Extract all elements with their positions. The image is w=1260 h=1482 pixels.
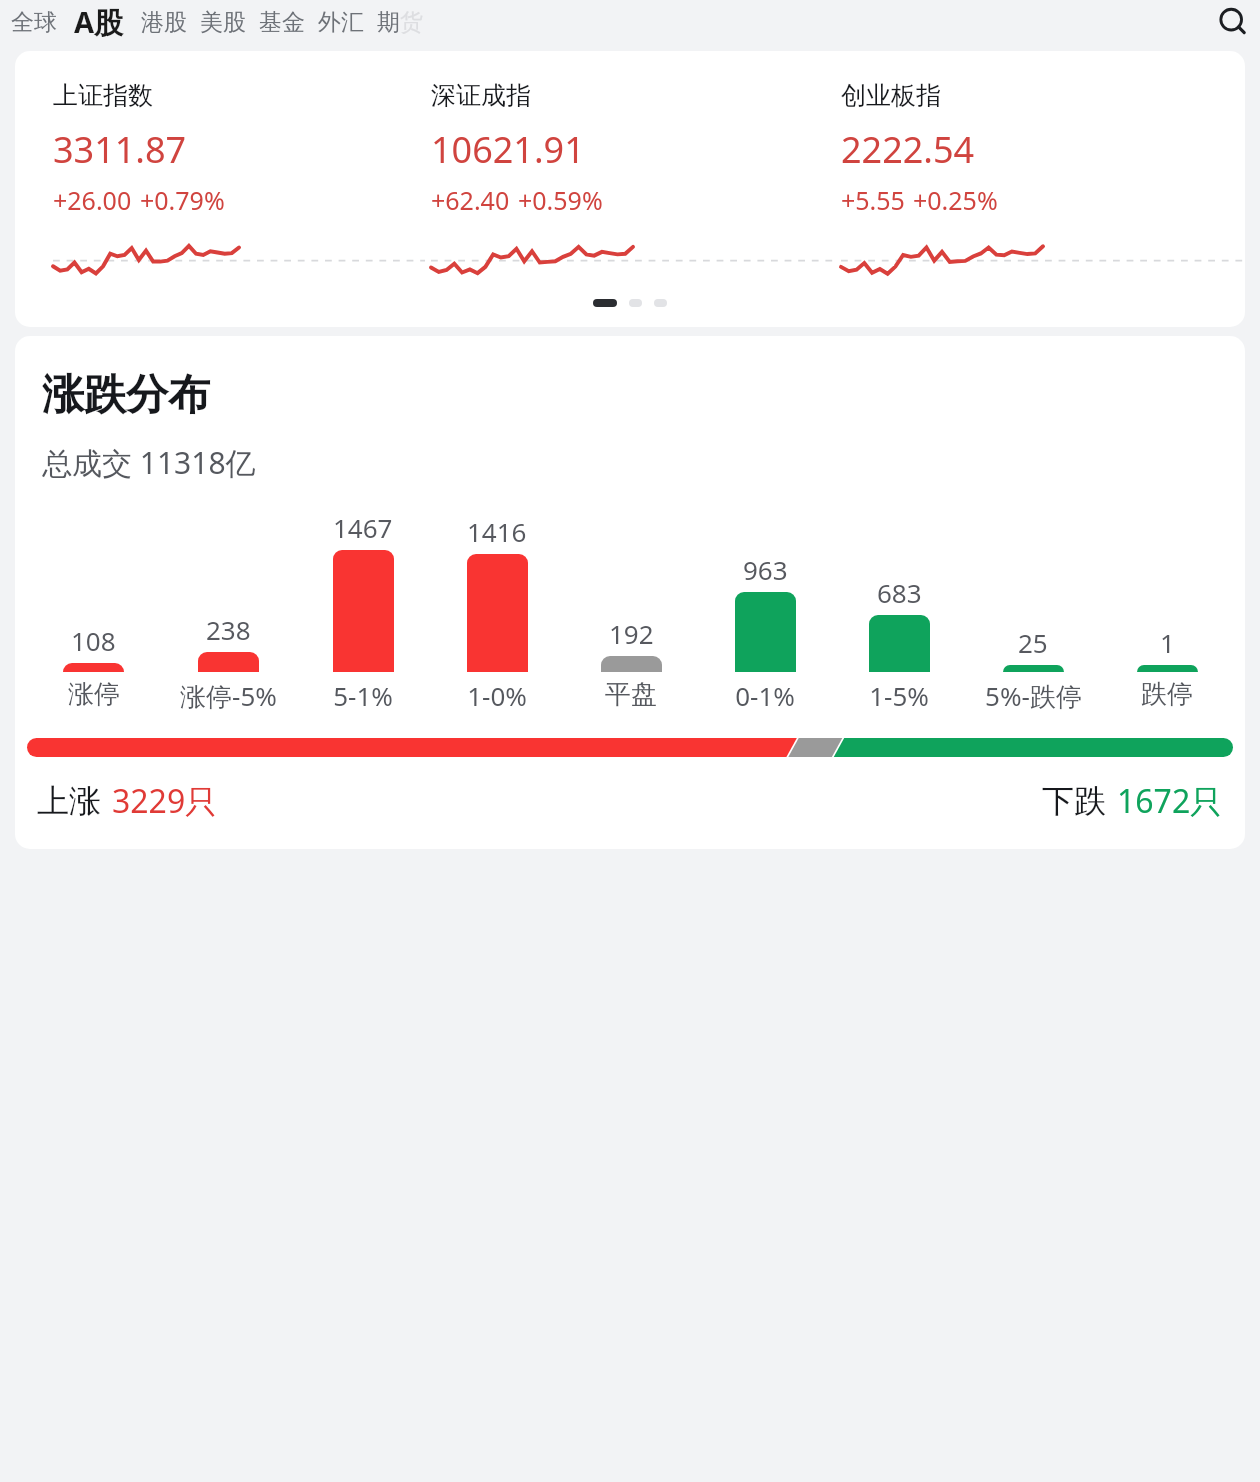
staticText: 外汇	[318, 8, 364, 37]
staticText: 3311.87	[53, 125, 187, 174]
button[interactable]: 涨跌分布	[15, 336, 1245, 849]
button[interactable]: 美股	[200, 8, 246, 37]
staticText: 2222.54	[841, 125, 975, 174]
button[interactable]: Search	[1210, 0, 1256, 44]
staticText: 港股	[141, 8, 187, 37]
button[interactable]: 港股	[141, 8, 187, 37]
staticText: 1	[1160, 625, 1175, 660]
staticText: +0.79%	[140, 183, 225, 217]
staticText: +26.00	[53, 183, 132, 217]
staticText: 上证指数	[53, 80, 153, 111]
staticText: +0.59%	[518, 183, 603, 217]
staticText: 基金	[259, 8, 305, 37]
staticText: 1-5%	[869, 678, 929, 713]
staticText: 涨跌分布	[42, 369, 210, 422]
staticText: 192	[609, 616, 654, 651]
staticText: 创业板指	[841, 80, 941, 111]
staticText: 10621.91	[431, 125, 585, 174]
staticText: 跌停	[1141, 678, 1193, 711]
staticText: 下跌	[1042, 781, 1106, 821]
staticText: 5-1%	[333, 678, 393, 713]
staticText: +0.25%	[913, 183, 998, 217]
staticText: 108	[71, 623, 116, 658]
button[interactable]: 全球	[11, 8, 57, 37]
staticText: 0-1%	[735, 678, 795, 713]
staticText: 上涨	[37, 781, 101, 821]
staticText: 深证成指	[431, 80, 531, 111]
staticText: 1467	[333, 510, 393, 545]
staticText: 3229只	[112, 779, 218, 823]
staticText: 全球	[11, 8, 57, 37]
staticText: 1-0%	[467, 678, 527, 713]
staticText: 1416	[467, 514, 527, 549]
staticText: 期	[377, 8, 400, 37]
staticText: 963	[743, 552, 788, 587]
button[interactable]: 期	[377, 8, 423, 37]
button[interactable]: 上证指数	[15, 51, 1245, 327]
staticText: +62.40	[431, 183, 510, 217]
staticText: 涨停-5%	[180, 678, 277, 714]
button[interactable]: 基金	[259, 8, 305, 37]
staticText: 1672只	[1117, 779, 1223, 823]
staticText: 涨停	[68, 678, 120, 711]
staticText: 总成交 11318亿	[42, 442, 256, 483]
staticText: +5.55	[841, 183, 905, 217]
staticText: 5%-跌停	[985, 678, 1082, 714]
staticText: 238	[206, 612, 251, 647]
staticText: 货	[400, 8, 423, 37]
staticText: 25	[1018, 625, 1048, 660]
button[interactable]: 外汇	[318, 8, 364, 37]
button[interactable]: A股	[74, 2, 124, 42]
staticText: 美股	[200, 8, 246, 37]
staticText: 683	[877, 575, 922, 610]
staticText: 平盘	[605, 678, 657, 711]
staticText: A股	[74, 2, 124, 42]
